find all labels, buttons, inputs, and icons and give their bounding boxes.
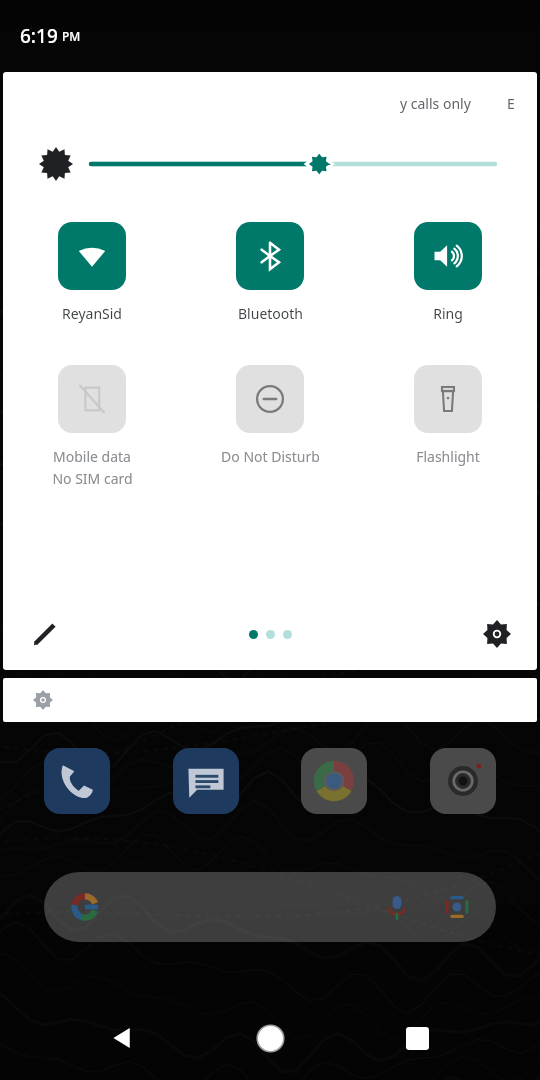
button[interactable]: Recent apps	[393, 1014, 441, 1062]
staticText: No SIM card	[52, 469, 133, 488]
button[interactable]: App	[173, 748, 239, 814]
button[interactable]: ReyanSid	[3, 222, 181, 323]
button[interactable]: Bluetooth	[181, 222, 359, 323]
button[interactable]: App	[44, 748, 110, 814]
staticText: ReyanSid	[62, 304, 122, 323]
staticText: Ring	[433, 304, 463, 323]
staticText: Bluetooth	[238, 304, 303, 323]
button[interactable]: Mobile data	[3, 365, 181, 488]
staticText: PM	[62, 28, 81, 44]
staticText: 6:19	[20, 23, 58, 49]
button[interactable]: Search	[44, 872, 496, 942]
staticText: y calls only	[400, 94, 471, 113]
staticText: Do Not Disturb	[221, 447, 320, 466]
button[interactable]: Settings shortcut	[3, 678, 537, 722]
button[interactable]: App	[301, 748, 367, 814]
staticText: E	[507, 94, 515, 113]
button[interactable]: Ring	[359, 222, 537, 323]
button[interactable]: App	[430, 748, 496, 814]
staticText: Flashlight	[416, 447, 480, 466]
other: Brightness	[39, 147, 73, 181]
button[interactable]: Flashlight	[359, 365, 537, 466]
button[interactable]: Do Not Disturb	[181, 365, 359, 466]
button[interactable]: Edit tiles	[31, 620, 59, 648]
staticText: Mobile data	[53, 447, 131, 466]
button[interactable]: Back	[99, 1014, 147, 1062]
button[interactable]	[91, 147, 501, 181]
button[interactable]: Home	[246, 1014, 294, 1062]
button[interactable]: Settings	[483, 620, 511, 648]
